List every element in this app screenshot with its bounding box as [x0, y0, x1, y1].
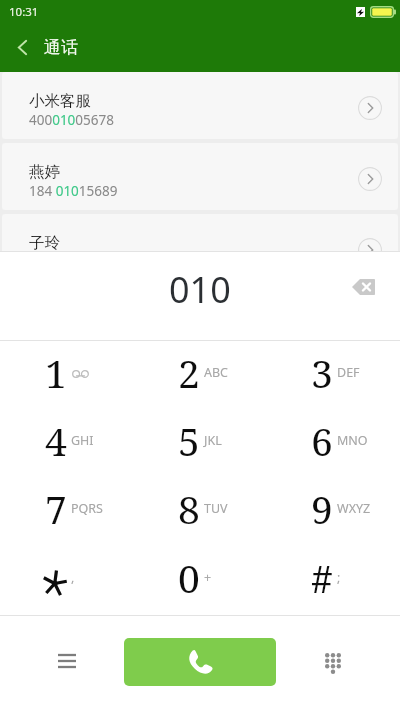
staticText: 8 [178, 482, 200, 535]
button[interactable]: Call [124, 638, 276, 686]
staticText: 0 [178, 551, 200, 604]
button[interactable]: Dialpad [314, 644, 352, 682]
staticText: 5 [178, 414, 200, 467]
staticText: DEF [337, 364, 360, 381]
staticText: 10:31 [9, 4, 39, 20]
staticText: + [204, 569, 212, 586]
staticText: 184 01015689 [29, 182, 118, 200]
button[interactable]: Details [358, 96, 382, 120]
button[interactable]: 5 [134, 409, 267, 477]
button[interactable]: 8 [134, 477, 267, 546]
staticText: PQRS [71, 500, 103, 517]
staticText: JKL [204, 432, 222, 449]
staticText: 1 [45, 346, 67, 399]
staticText: TUV [204, 500, 228, 517]
staticText: , [71, 569, 75, 586]
staticText: 燕婷 [29, 162, 60, 182]
staticText: ABC [204, 364, 229, 381]
button[interactable]: 9 [267, 477, 400, 546]
button[interactable]: 4 [0, 409, 134, 477]
staticText: 小米客服 [29, 91, 91, 111]
staticText: 3 [311, 346, 333, 399]
staticText: ; [337, 569, 341, 586]
button[interactable]: Backspace [345, 269, 381, 305]
button[interactable]: Menu [48, 642, 86, 680]
button[interactable]: 7 [0, 477, 134, 546]
staticText: 40001005678 [29, 111, 114, 129]
button[interactable]: 2 [134, 341, 267, 409]
staticText: # [311, 551, 333, 604]
button[interactable]: 6 [267, 409, 400, 477]
button[interactable]: 子玲 [2, 214, 398, 251]
staticText: 通话 [44, 37, 78, 58]
staticText: 子玲 [29, 233, 60, 251]
staticText: 4 [45, 414, 67, 467]
staticText: WXYZ [337, 500, 371, 517]
other: Back [18, 40, 27, 55]
button[interactable]: , [0, 546, 134, 615]
staticText: 010 [169, 265, 231, 314]
button[interactable]: # [267, 546, 400, 615]
staticText: MNO [337, 432, 368, 449]
button[interactable]: Back [0, 27, 90, 68]
button[interactable]: 0 [134, 546, 267, 615]
staticText: 2 [178, 346, 200, 399]
staticText: 9 [311, 482, 333, 535]
button[interactable]: 3 [267, 341, 400, 409]
staticText: 6 [311, 414, 333, 467]
button[interactable]: Details [358, 238, 382, 251]
staticText: GHI [71, 432, 94, 449]
button[interactable]: 小米客服 [2, 72, 398, 139]
button[interactable]: 燕婷 [2, 143, 398, 210]
button[interactable]: 1 [0, 341, 134, 409]
button[interactable]: Details [358, 167, 382, 191]
staticText: 7 [45, 482, 67, 535]
